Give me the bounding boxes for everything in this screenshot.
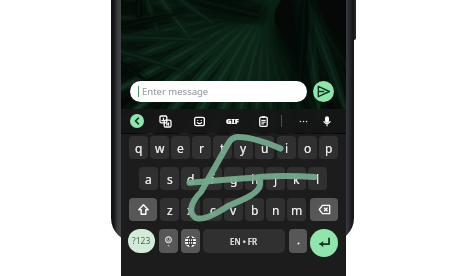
- button[interactable]: Send: [313, 81, 334, 102]
- button[interactable]: Translate: [156, 112, 174, 130]
- staticText: v: [230, 202, 237, 218]
- staticText: p: [325, 140, 333, 156]
- staticText: g: [230, 171, 238, 187]
- button[interactable]: Shift: [129, 198, 157, 221]
- staticText: a: [145, 171, 152, 187]
- button[interactable]: f: [203, 167, 222, 190]
- button[interactable]: More options: [294, 112, 312, 130]
- button[interactable]: p: [319, 136, 338, 159]
- button[interactable]: ?123: [128, 229, 155, 253]
- staticText: f: [210, 171, 215, 187]
- staticText: t: [220, 140, 225, 156]
- staticText: w: [155, 140, 165, 156]
- staticText: ?123: [132, 235, 151, 247]
- staticText: z: [167, 202, 173, 218]
- button[interactable]: k: [287, 167, 306, 190]
- staticText: u: [261, 140, 269, 156]
- staticText: e: [177, 140, 184, 156]
- button[interactable]: Stickers: [190, 112, 208, 130]
- button[interactable]: d: [181, 167, 200, 190]
- button[interactable]: h: [245, 167, 264, 190]
- staticText: m: [291, 202, 303, 218]
- button[interactable]: Clipboard: [254, 112, 272, 130]
- staticText: s: [167, 171, 173, 187]
- button[interactable]: Backspace: [310, 198, 338, 221]
- staticText: n: [272, 202, 280, 218]
- staticText: k: [293, 171, 300, 187]
- button[interactable]: o: [298, 136, 317, 159]
- button[interactable]: x: [181, 198, 200, 221]
- button[interactable]: Language: [181, 229, 200, 253]
- button[interactable]: b: [245, 198, 264, 221]
- button[interactable]: l: [308, 167, 327, 190]
- button[interactable]: q: [129, 136, 148, 159]
- button[interactable]: s: [160, 167, 179, 190]
- staticText: b: [251, 202, 259, 218]
- button[interactable]: Enter message: [130, 81, 307, 102]
- staticText: c: [210, 202, 216, 218]
- button[interactable]: w: [150, 136, 169, 159]
- button[interactable]: Emoji: [159, 229, 178, 253]
- staticText: h: [251, 171, 259, 187]
- staticText: d: [187, 171, 195, 187]
- button[interactable]: m: [287, 198, 306, 221]
- staticText: GIF: [226, 116, 239, 126]
- staticText: Enter message: [142, 85, 209, 98]
- button[interactable]: z: [160, 198, 179, 221]
- staticText: y: [240, 140, 247, 156]
- button[interactable]: j: [266, 167, 285, 190]
- button[interactable]: Period: [289, 229, 307, 253]
- staticText: x: [187, 202, 194, 218]
- staticText: r: [199, 140, 204, 156]
- button[interactable]: c: [203, 198, 222, 221]
- button[interactable]: n: [266, 198, 285, 221]
- button[interactable]: e: [171, 136, 190, 159]
- button[interactable]: Enter: [310, 229, 338, 257]
- button[interactable]: t: [213, 136, 232, 159]
- button[interactable]: i: [277, 136, 296, 159]
- button[interactable]: Voice input: [318, 112, 336, 130]
- button[interactable]: a: [139, 167, 158, 190]
- button[interactable]: Back: [130, 114, 144, 128]
- button[interactable]: GIF: [222, 112, 242, 130]
- staticText: i: [285, 140, 289, 156]
- staticText: j: [274, 171, 278, 187]
- button[interactable]: u: [255, 136, 274, 159]
- button[interactable]: r: [192, 136, 211, 159]
- staticText: l: [316, 171, 320, 187]
- staticText: q: [135, 140, 143, 156]
- staticText: EN • FR: [230, 236, 258, 247]
- button[interactable]: v: [224, 198, 243, 221]
- button[interactable]: g: [224, 167, 243, 190]
- button[interactable]: y: [234, 136, 253, 159]
- staticText: o: [304, 140, 312, 156]
- button[interactable]: EN • FR: [203, 229, 285, 253]
